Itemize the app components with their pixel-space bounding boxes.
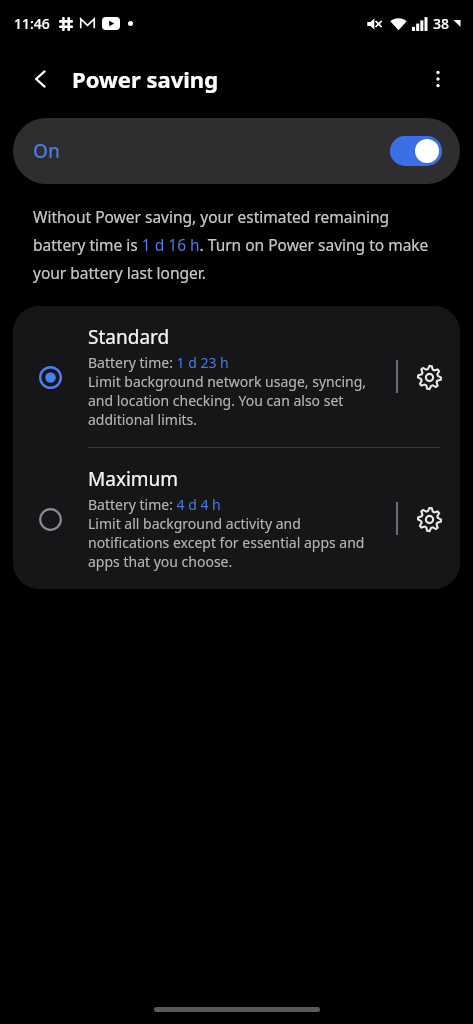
button[interactable]: Settings for Standard [398, 355, 460, 399]
staticText: On [33, 138, 60, 164]
button[interactable]: More options [421, 62, 455, 96]
staticText: Standard [88, 324, 170, 350]
staticText: Maximum [88, 466, 179, 492]
staticText: 11:46 [14, 14, 50, 33]
staticText: Battery time: 1 d 23 h [88, 353, 229, 372]
staticText: Battery time: 4 d 4 h [88, 495, 221, 514]
button[interactable]: Standard [13, 306, 460, 447]
staticText: 38 [433, 14, 450, 33]
staticText: Without Power saving, your estimated rem… [33, 206, 440, 284]
staticText: Power saving [72, 64, 219, 94]
staticText: Limit background network usage, syncing,… [88, 372, 384, 429]
button[interactable]: Settings for Maximum [398, 497, 460, 541]
staticText: Limit all background activity and notifi… [88, 514, 384, 571]
button[interactable]: Back [24, 62, 58, 96]
button[interactable]: Maximum [13, 448, 460, 589]
button[interactable]: On [13, 118, 460, 184]
